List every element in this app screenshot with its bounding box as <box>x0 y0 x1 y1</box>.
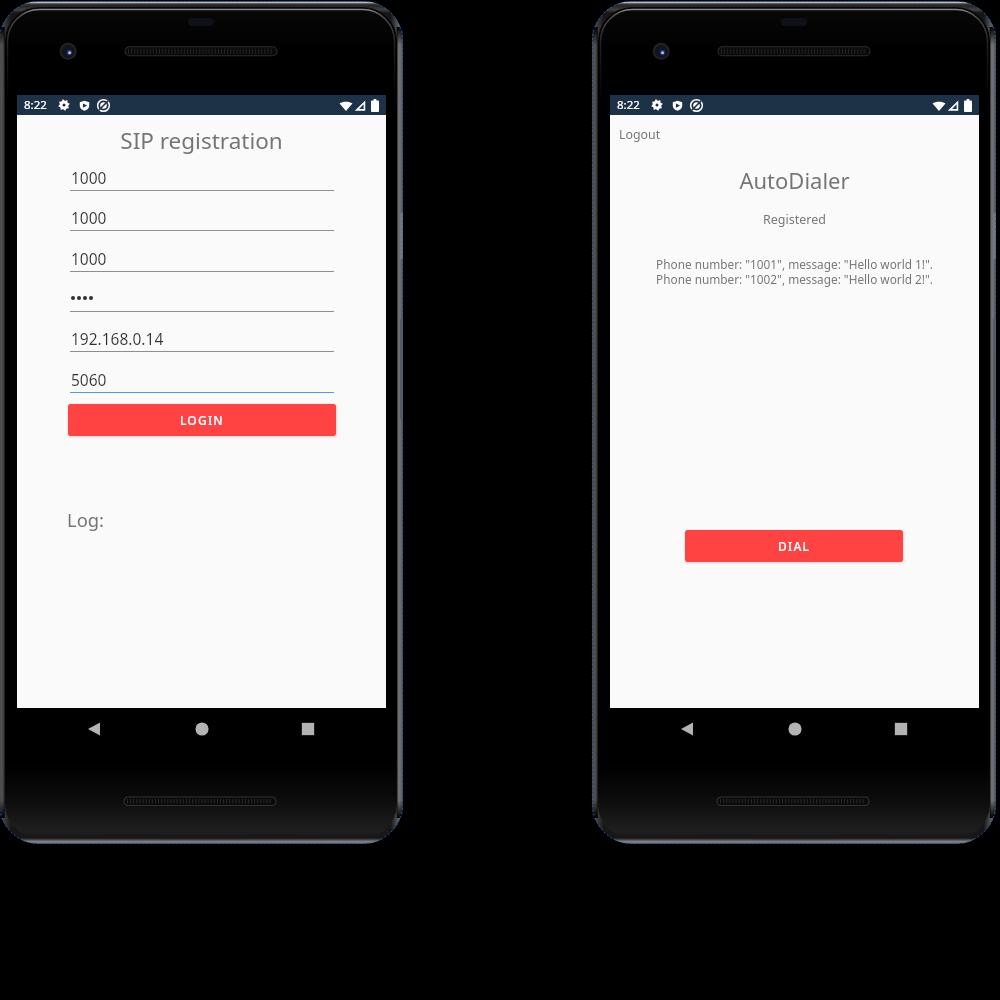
button[interactable]: Home <box>195 722 209 736</box>
staticText: 5060 <box>71 369 107 390</box>
staticText: 8:22 <box>24 97 47 113</box>
staticText: 1000 <box>71 167 107 188</box>
button[interactable]: DIAL <box>685 530 903 562</box>
button[interactable]: Logout <box>619 126 661 143</box>
staticText: 1000 <box>71 207 107 228</box>
staticText: LOGIN <box>180 412 224 428</box>
button[interactable]: Back <box>87 722 101 736</box>
staticText: 1000 <box>71 248 107 269</box>
button[interactable]: Back <box>680 722 694 736</box>
staticText: 8:22 <box>617 97 640 113</box>
button[interactable]: Home <box>788 722 802 736</box>
staticText: Phone number: "1001", message: "Hello wo… <box>610 256 979 287</box>
button[interactable]: LOGIN <box>68 404 336 436</box>
button[interactable]: Recents <box>894 722 908 736</box>
staticText: SIP registration <box>17 125 386 156</box>
staticText: AutoDialer <box>610 165 979 195</box>
staticText: DIAL <box>778 538 811 554</box>
staticText: Log: <box>67 507 105 532</box>
staticText: 192.168.0.14 <box>71 328 164 349</box>
staticText: Registered <box>610 211 979 228</box>
button[interactable]: Recents <box>301 722 315 736</box>
